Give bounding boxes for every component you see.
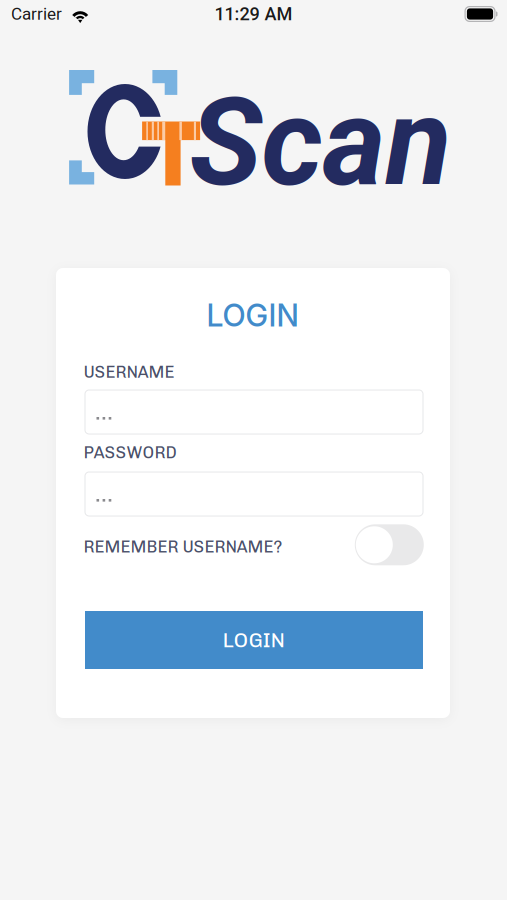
- button[interactable]: LOGIN: [85, 611, 423, 669]
- staticText: USERNAME: [83, 362, 174, 382]
- staticText: LOGIN: [206, 297, 298, 334]
- staticText: LOGIN: [222, 627, 285, 652]
- staticText: 11:29 AM: [214, 3, 292, 25]
- staticText: Carrier: [11, 4, 62, 24]
- staticText: Scan: [189, 72, 451, 214]
- button[interactable]: Remember username: [355, 524, 424, 565]
- staticText: REMEMBER USERNAME?: [83, 537, 282, 557]
- staticText: PASSWORD: [83, 442, 176, 462]
